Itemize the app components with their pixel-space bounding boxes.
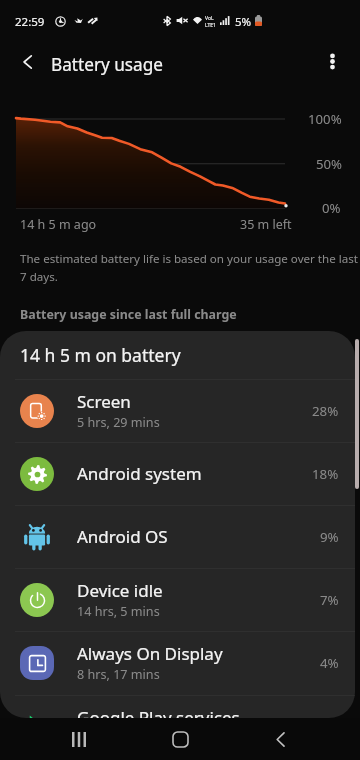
staticText: 22:59 <box>15 14 45 30</box>
staticText: Battery usage <box>51 53 164 76</box>
button[interactable]: More options <box>309 38 356 85</box>
staticText: 14 hrs, 5 mins <box>77 603 160 620</box>
button[interactable]: Recents <box>55 718 103 760</box>
staticText: Android system <box>77 462 202 485</box>
staticText: Screen <box>77 390 131 413</box>
staticText: Always On Display <box>77 642 223 665</box>
button[interactable]: Screen <box>0 379 355 442</box>
button[interactable]: Back <box>256 718 304 760</box>
button[interactable]: Home <box>156 718 204 760</box>
button[interactable]: Back <box>4 38 51 85</box>
staticText: 7% <box>320 591 339 609</box>
button[interactable]: Android OS <box>0 505 355 568</box>
button[interactable]: Android system <box>0 442 355 505</box>
staticText: 9% <box>320 528 339 546</box>
staticText: 100% <box>308 110 342 128</box>
staticText: Device idle <box>77 579 163 602</box>
staticText: 18% <box>312 465 339 483</box>
staticText: 50% <box>316 155 343 173</box>
staticText: The estimated battery life is based on y… <box>20 251 359 284</box>
staticText: 28% <box>312 402 339 420</box>
staticText: LTE1 <box>205 22 216 29</box>
button[interactable]: Always On Display <box>0 631 355 694</box>
staticText: VoL <box>205 15 214 22</box>
staticText: Battery usage since last full charge <box>20 306 237 323</box>
staticText: 0% <box>322 199 341 217</box>
button[interactable]: Device idle <box>0 568 355 631</box>
staticText: 5% <box>235 14 252 30</box>
staticText: 8 hrs, 17 mins <box>77 666 160 683</box>
staticText: 5 hrs, 29 mins <box>77 414 160 431</box>
staticText: 14 h 5 m on battery <box>20 343 181 367</box>
staticText: Android OS <box>77 525 168 548</box>
button[interactable]: Google Play services <box>0 695 355 718</box>
staticText: 35 m left <box>240 216 292 233</box>
staticText: 14 h 5 m ago <box>20 216 97 233</box>
staticText: Google Play services <box>77 706 240 718</box>
staticText: 4% <box>320 654 339 672</box>
